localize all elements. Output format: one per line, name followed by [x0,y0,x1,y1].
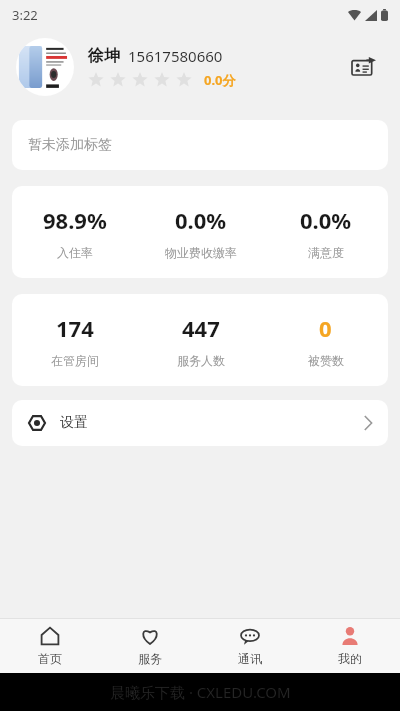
staticText: 设置 [60,414,88,432]
button[interactable]: 设置 [12,400,388,446]
button[interactable]: 分享名片 [344,47,384,87]
button[interactable]: 0.0% [263,186,388,278]
staticText: 服务 [138,651,162,666]
staticText: 0.0分 [204,71,236,89]
staticText: 通讯 [238,651,262,666]
button[interactable]: 174 [12,294,138,386]
staticText: 徐坤 [88,46,120,66]
staticText: 15617580660 [128,46,223,66]
button[interactable]: 0.0% [138,186,263,278]
button[interactable]: 我的 [300,619,400,673]
button[interactable]: 服务 [100,619,200,673]
staticText: 447 [182,313,220,343]
staticText: 服务人数 [177,353,225,368]
button[interactable]: 0 [263,294,388,386]
button[interactable]: 头像 [0,30,400,104]
staticText: 98.9% [43,205,107,235]
staticText: 0.0% [300,205,352,235]
staticText: 被赞数 [308,353,344,368]
staticText: 在管房间 [51,353,99,368]
staticText: 首页 [38,651,62,666]
staticText: 物业费收缴率 [165,245,237,260]
staticText: 174 [56,313,94,343]
button[interactable]: 暂未添加标签 [12,120,388,170]
staticText: 暂未添加标签 [28,136,112,154]
button[interactable]: 447 [138,294,263,386]
button[interactable]: 98.9% [12,186,138,278]
staticText: 3:22 [12,6,38,24]
staticText: 0 [319,313,332,343]
button[interactable]: 头像 [16,38,74,96]
staticText: 满意度 [308,245,344,260]
button[interactable]: 通讯 [200,619,300,673]
staticText: 晨曦乐下载 · CXLEDU.COM [110,682,291,702]
staticText: 入住率 [57,245,93,260]
button[interactable]: 首页 [0,619,100,673]
staticText: 0.0% [175,205,227,235]
staticText: 我的 [338,651,362,666]
